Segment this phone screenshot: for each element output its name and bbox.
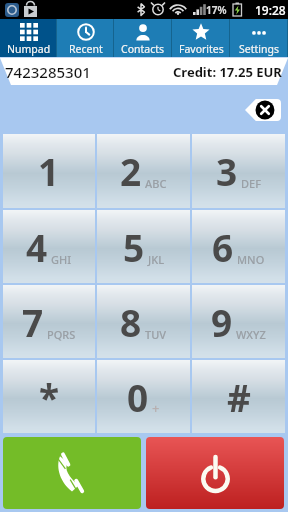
staticText: 2 xyxy=(120,146,142,196)
staticText: + xyxy=(152,399,160,417)
button[interactable]: Call xyxy=(3,437,141,509)
button[interactable]: 2 xyxy=(97,134,190,208)
button[interactable]: 4 xyxy=(3,210,95,283)
button[interactable]: Contacts xyxy=(114,19,172,57)
staticText: 9 xyxy=(211,297,233,347)
button[interactable]: Backspace xyxy=(245,99,281,121)
staticText: Favorites xyxy=(179,42,224,56)
staticText: Numpad xyxy=(7,42,51,56)
staticText: JKL xyxy=(148,252,165,267)
button[interactable]: 1 xyxy=(3,134,95,208)
button[interactable]: 0 xyxy=(97,360,190,433)
staticText: 0 xyxy=(127,372,149,422)
staticText: TUV xyxy=(145,327,167,342)
button[interactable]: 8 xyxy=(97,285,190,358)
staticText: 7423285301 xyxy=(5,62,91,82)
staticText: 7 xyxy=(22,297,44,347)
staticText: 4 xyxy=(26,222,48,272)
staticText: 6 xyxy=(212,222,234,272)
button[interactable]: 3 xyxy=(192,134,285,208)
staticText: * xyxy=(39,372,60,422)
staticText: ABC xyxy=(145,176,167,191)
staticText: 1 xyxy=(38,146,60,196)
staticText: 8 xyxy=(120,297,142,347)
button[interactable]: # xyxy=(192,360,285,433)
button[interactable]: Numpad xyxy=(0,19,57,57)
staticText: GHI xyxy=(51,252,72,267)
button[interactable]: 5 xyxy=(97,210,190,283)
staticText: 3 xyxy=(216,146,238,196)
button[interactable]: Settings xyxy=(230,19,288,57)
button[interactable]: Favorites xyxy=(172,19,230,57)
staticText: Recent xyxy=(69,42,103,56)
staticText: PQRS xyxy=(47,327,76,342)
staticText: 19:28 xyxy=(255,2,286,18)
staticText: DEF xyxy=(241,176,261,191)
button[interactable]: 6 xyxy=(192,210,285,283)
button[interactable]: 7 xyxy=(3,285,95,358)
staticText: Settings xyxy=(239,42,279,56)
button[interactable]: * xyxy=(3,360,95,433)
staticText: Contacts xyxy=(121,42,165,56)
staticText: Credit: 17.25 EUR xyxy=(173,63,282,81)
button[interactable]: End call xyxy=(146,437,284,509)
staticText: MNO xyxy=(237,252,265,267)
staticText: 5 xyxy=(123,222,145,272)
staticText: WXYZ xyxy=(236,327,266,342)
staticText: # xyxy=(227,372,251,422)
button[interactable]: 9 xyxy=(192,285,285,358)
staticText: 17% xyxy=(206,3,227,17)
button[interactable]: Recent xyxy=(57,19,114,57)
